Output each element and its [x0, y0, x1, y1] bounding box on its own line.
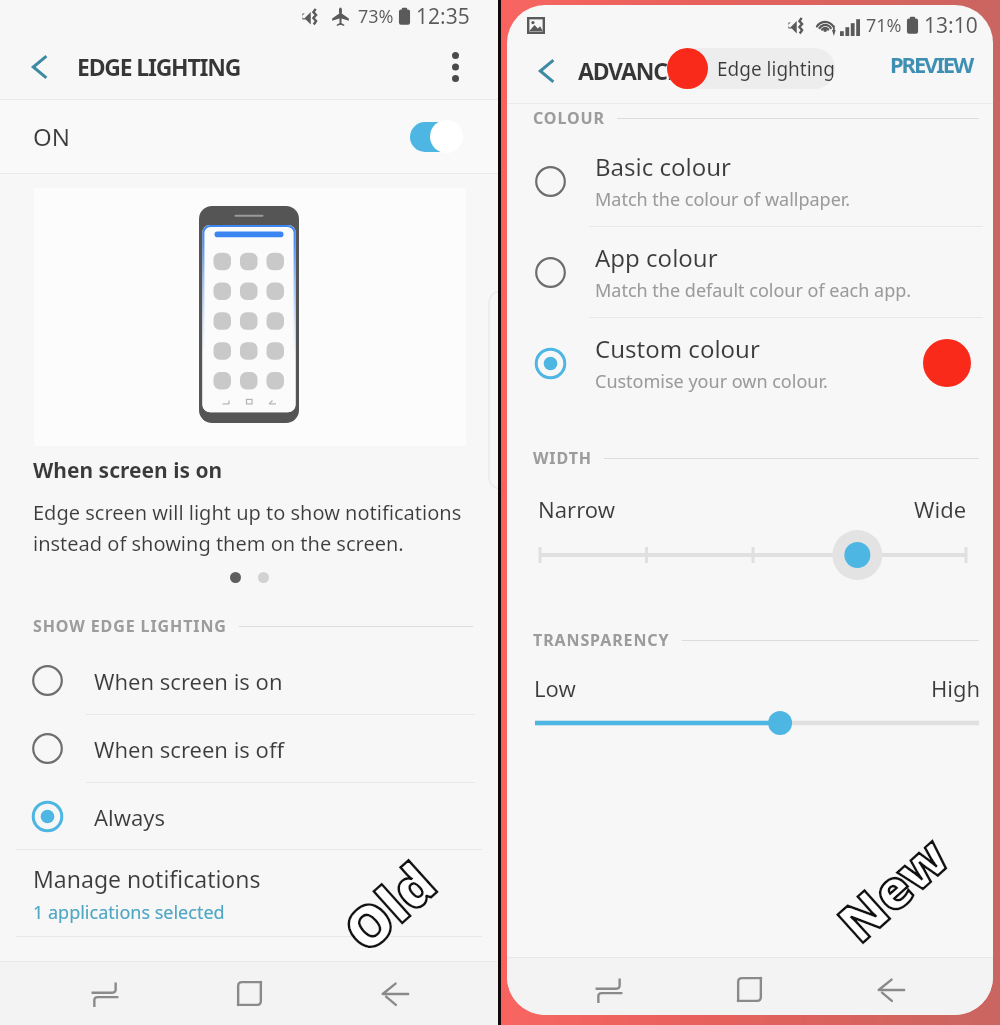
staticText: 73% [358, 4, 394, 29]
staticText: WIDTH [533, 447, 592, 469]
staticText: New [822, 819, 963, 956]
staticText: PREVIEW [890, 49, 973, 79]
staticText: Old [326, 845, 451, 967]
button[interactable]: Recents [539, 958, 679, 1015]
button[interactable]: Back [16, 44, 62, 90]
button[interactable]: When screen is on [0, 647, 499, 714]
button[interactable]: Custom colour swatch [923, 339, 971, 387]
staticText: EDGE LIGHTING [77, 51, 241, 82]
staticText: SHOW EDGE LIGHTING [33, 615, 227, 637]
staticText: When screen is on [33, 456, 223, 485]
staticText: When screen is on [94, 666, 283, 696]
button[interactable]: Back [820, 958, 961, 1015]
staticText: Basic colour [595, 150, 732, 183]
staticText: Edge lighting [717, 56, 835, 82]
staticText: Match the colour of wallpaper. [595, 187, 851, 212]
staticText: New [822, 819, 963, 956]
staticText: Narrow [538, 494, 615, 524]
button[interactable]: Custom colour [507, 318, 993, 408]
button[interactable]: Recents [32, 962, 177, 1025]
staticText: App colour [595, 241, 718, 274]
staticText: Customise your own colour. [595, 369, 828, 394]
button[interactable]: More options [433, 45, 477, 89]
button[interactable]: Back [523, 48, 569, 94]
staticText: Custom colour [595, 332, 760, 365]
button[interactable]: Edge lighting [667, 48, 835, 89]
staticText: 13:10 [924, 11, 978, 40]
staticText: 1 applications selected [33, 900, 225, 925]
staticText: 71% [866, 13, 902, 38]
button[interactable]: ON [0, 100, 499, 173]
staticText: 12:35 [416, 2, 470, 31]
staticText: Always [94, 802, 166, 832]
staticText: When screen is off [94, 734, 285, 764]
button[interactable]: App colour [507, 227, 993, 317]
staticText: High [931, 673, 981, 703]
staticText: Old [326, 845, 451, 967]
staticText: Match the default colour of each app. [595, 278, 912, 303]
button[interactable]: Home [679, 958, 820, 1015]
staticText: Low [534, 673, 576, 703]
button[interactable]: Home [177, 962, 322, 1025]
button[interactable]: Width slider [507, 527, 993, 583]
staticText: Manage notifications [33, 863, 261, 894]
staticText: ON [33, 120, 70, 153]
staticText: Wide [914, 494, 967, 524]
staticText: COLOUR [533, 107, 605, 129]
button[interactable]: Always [0, 783, 499, 850]
button[interactable]: When screen is off [0, 715, 499, 782]
button[interactable]: Back [322, 962, 467, 1025]
button[interactable]: Manage notifications [0, 852, 499, 936]
button[interactable]: Transparency slider [507, 703, 993, 743]
button[interactable]: PREVIEW [885, 41, 978, 87]
button[interactable]: Basic colour [507, 136, 993, 226]
staticText: ADVANCED [578, 55, 695, 86]
staticText: TRANSPARENCY [533, 629, 670, 651]
staticText: Edge screen will light up to show notifi… [33, 499, 462, 557]
